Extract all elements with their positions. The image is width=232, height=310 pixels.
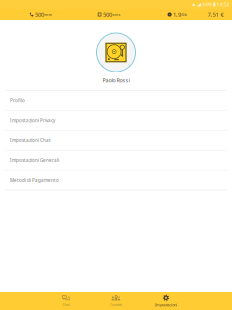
staticText: 14:58: [216, 1, 229, 8]
staticText: Impostazioni Privacy: [10, 117, 55, 124]
staticText: 7,51 €: [207, 10, 223, 18]
button[interactable]: Impostazioni Generali: [0, 151, 232, 171]
staticText: Contatti: [110, 302, 122, 307]
staticText: 500: [35, 10, 44, 18]
staticText: Profilo: [10, 97, 25, 104]
staticText: 500: [103, 10, 112, 18]
staticText: Gb: [181, 12, 186, 17]
staticText: sms: [112, 12, 120, 17]
staticText: 1,9: [173, 10, 181, 18]
staticText: Metodi di Pagamento: [10, 177, 59, 183]
button[interactable]: Impostazioni Privacy: [0, 111, 232, 131]
button[interactable]: Metodi di Pagamento: [0, 171, 232, 190]
staticText: Chat: [62, 302, 69, 307]
button[interactable]: Impostazioni Chat: [0, 131, 232, 151]
staticText: Impostazioni Chat: [10, 137, 51, 143]
button[interactable]: Chat: [41, 292, 91, 310]
staticText: Impostazioni: [155, 302, 177, 307]
button[interactable]: Contatti: [91, 292, 141, 310]
button[interactable]: Profilo: [0, 91, 232, 111]
staticText: Impostazioni Generali: [10, 157, 59, 163]
staticText: Paolo Rossi: [102, 76, 129, 84]
staticText: 44%: [202, 1, 212, 8]
button[interactable]: Impostazioni: [141, 292, 191, 310]
staticText: min: [44, 12, 51, 17]
